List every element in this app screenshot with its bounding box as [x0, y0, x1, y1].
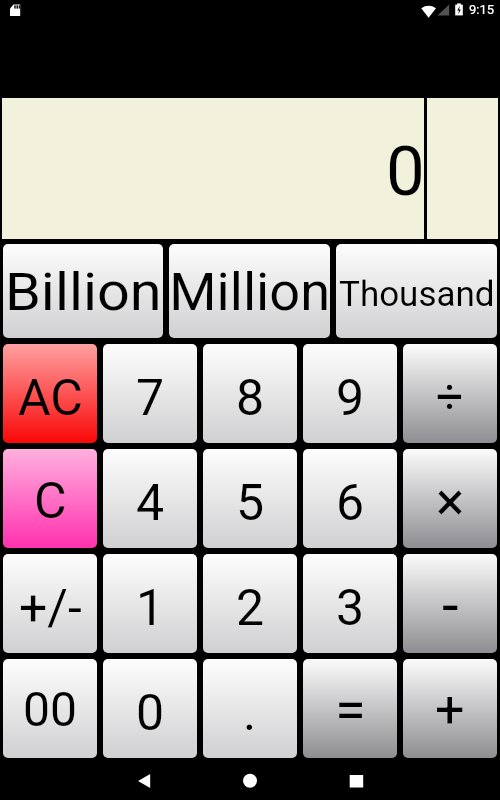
staticText: Billion [5, 263, 162, 323]
staticText: + [435, 679, 465, 740]
button[interactable]: Recent apps [331, 761, 381, 800]
staticText: 7 [136, 369, 165, 428]
button[interactable]: +/- [3, 554, 97, 653]
button[interactable]: 9 [303, 344, 397, 443]
button[interactable]: Back [119, 761, 169, 800]
staticText: 6 [336, 474, 365, 533]
button[interactable]: C [3, 449, 97, 548]
button[interactable]: ÷ [403, 344, 497, 443]
button[interactable]: 8 [203, 344, 297, 443]
staticText: AC [18, 369, 83, 428]
button[interactable]: + [403, 659, 497, 758]
staticText: . [243, 684, 257, 743]
button[interactable]: . [203, 659, 297, 758]
staticText: - [442, 570, 459, 640]
button[interactable]: 5 [203, 449, 297, 548]
staticText: C [34, 472, 67, 531]
staticText: 4 [136, 474, 165, 533]
button[interactable]: 4 [103, 449, 197, 548]
button[interactable]: Thousand [336, 244, 497, 338]
button[interactable]: 1 [103, 554, 197, 653]
staticText: 1 [136, 579, 165, 638]
staticText: × [436, 471, 465, 533]
button[interactable]: - [403, 554, 497, 653]
button[interactable]: 00 [3, 659, 97, 758]
staticText: 00 [23, 681, 77, 737]
staticText: Thousand [339, 274, 495, 315]
staticText: ÷ [436, 368, 464, 424]
staticText: 2 [236, 579, 265, 638]
staticText: Million [169, 263, 330, 323]
staticText: 5 [236, 474, 265, 533]
staticText: +/- [19, 579, 82, 638]
staticText: 0 [136, 684, 165, 743]
button[interactable]: 6 [303, 449, 397, 548]
button[interactable]: 3 [303, 554, 397, 653]
button[interactable]: Home [225, 761, 275, 800]
button[interactable]: 2 [203, 554, 297, 653]
button[interactable]: 7 [103, 344, 197, 443]
staticText: 3 [336, 579, 365, 638]
staticText: 0 [386, 131, 425, 212]
staticText: = [335, 677, 366, 743]
button[interactable]: Billion [3, 244, 163, 338]
button[interactable]: Million [169, 244, 330, 338]
staticText: 8 [236, 369, 265, 428]
button[interactable]: = [303, 659, 397, 758]
button[interactable]: 0 [103, 659, 197, 758]
staticText: 9 [336, 369, 365, 428]
button[interactable]: AC [3, 344, 97, 443]
button[interactable]: × [403, 449, 497, 548]
staticText: 9:15 [469, 2, 495, 17]
